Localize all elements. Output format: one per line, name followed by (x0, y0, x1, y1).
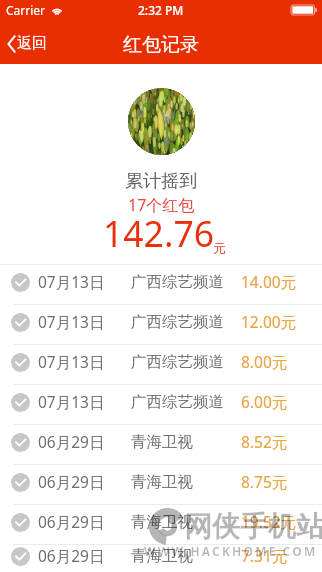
button[interactable]: 06月29日 (0, 545, 322, 572)
staticText: 07月13日 (38, 311, 105, 332)
button[interactable]: 返回 (0, 27, 55, 60)
staticText: 青海卫视 (131, 432, 193, 452)
staticText: 06月29日 (38, 431, 105, 452)
staticText: 累计摇到 (125, 170, 197, 193)
staticText: 7.31元 (241, 545, 288, 566)
staticText: 07月13日 (38, 391, 105, 412)
staticText: 07月13日 (38, 351, 105, 372)
staticText: 2:32 PM (138, 2, 184, 18)
staticText: WWW.HACKHOME.COM (144, 543, 318, 559)
staticText: 青海卫视 (131, 472, 193, 492)
staticText: 8.52元 (241, 431, 288, 452)
staticText: 广西综艺频道 (131, 272, 224, 292)
staticText: 青海卫视 (131, 512, 193, 532)
button[interactable]: 07月13日 (0, 305, 322, 345)
staticText: 12.00元 (241, 311, 297, 332)
staticText: 142.76 (103, 209, 215, 257)
staticText: 6.00元 (241, 391, 288, 412)
button[interactable]: 07月13日 (0, 345, 322, 385)
button[interactable]: 07月13日 (0, 265, 322, 305)
staticText: 广西综艺频道 (131, 312, 224, 332)
staticText: 07月13日 (38, 271, 105, 292)
button[interactable]: 07月13日 (0, 385, 322, 425)
staticText: 06月29日 (38, 511, 105, 532)
staticText: 06月29日 (38, 545, 105, 566)
staticText: 网侠手机站 (184, 509, 322, 544)
staticText: 8.00元 (241, 351, 288, 372)
staticText: 红包记录 (123, 33, 199, 57)
staticText: 14.00元 (241, 271, 297, 292)
staticText: 青海卫视 (131, 546, 193, 566)
staticText: 广西综艺频道 (131, 392, 224, 412)
button[interactable]: 06月29日 (0, 425, 322, 465)
button[interactable]: 06月29日 (0, 505, 322, 545)
staticText: 19.52元 (241, 511, 297, 532)
staticText: Carrier (6, 2, 46, 18)
staticText: 06月29日 (38, 471, 105, 492)
staticText: 17个红包 (128, 194, 195, 216)
staticText: 返回 (17, 34, 47, 53)
staticText: 8.75元 (241, 471, 288, 492)
staticText: 广西综艺频道 (131, 352, 224, 372)
staticText: 元 (213, 240, 226, 256)
button[interactable]: 06月29日 (0, 465, 322, 505)
